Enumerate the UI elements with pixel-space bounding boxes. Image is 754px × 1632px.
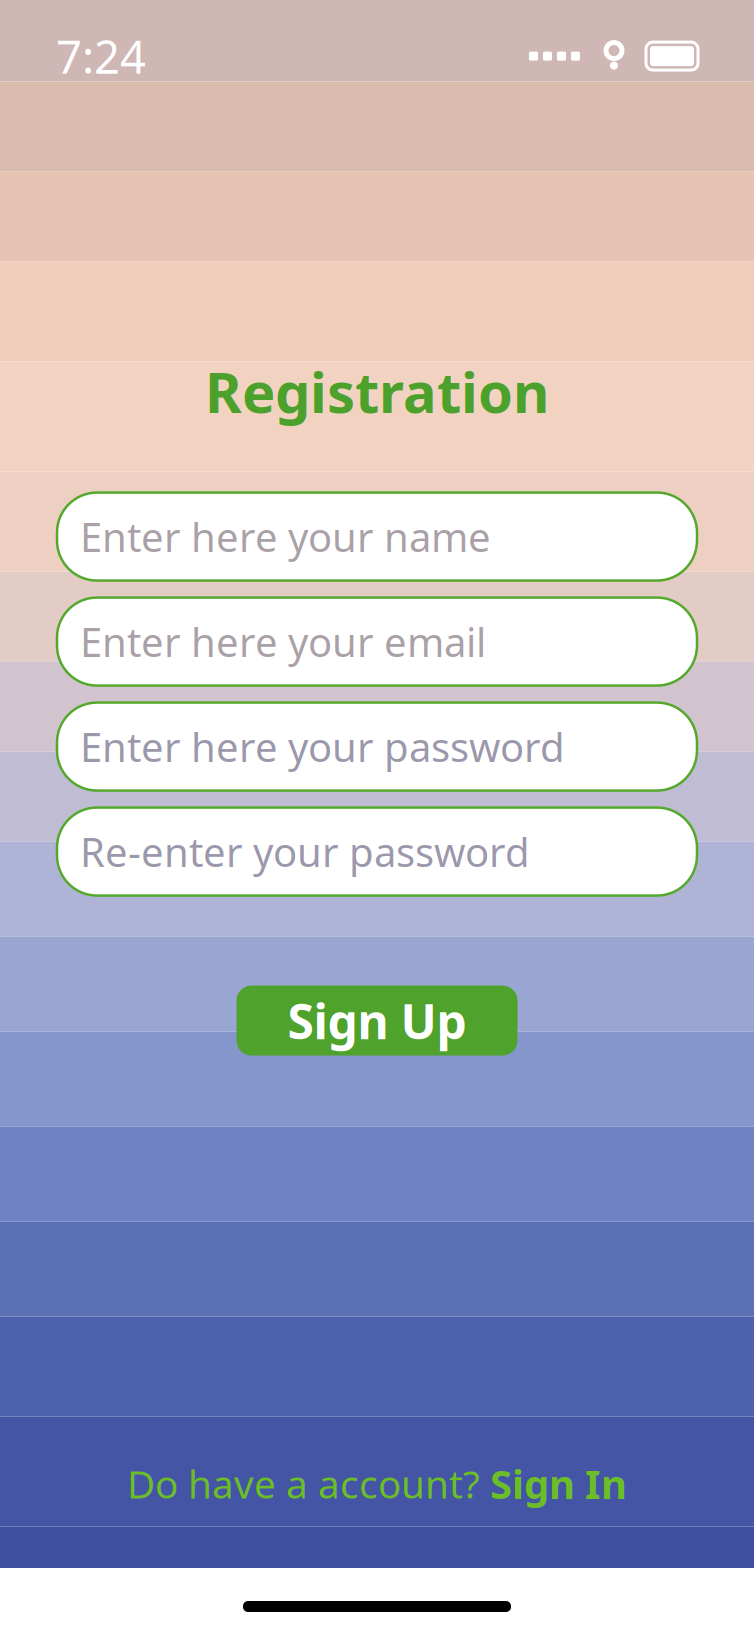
button[interactable]: Enter here your email <box>57 598 697 686</box>
staticText: Registration <box>205 354 549 429</box>
button[interactable]: Sign Up <box>236 986 517 1056</box>
staticText: Enter here your password <box>80 720 565 773</box>
staticText: Sign In <box>490 1457 627 1510</box>
button[interactable]: Enter here your password <box>57 703 697 791</box>
staticText: Re-enter your password <box>80 825 530 878</box>
button[interactable]: Enter here your name <box>57 493 697 581</box>
staticText: Enter here your name <box>80 510 491 563</box>
staticText: 7:24 <box>56 26 146 86</box>
staticText: Sign Up <box>287 989 466 1052</box>
button[interactable]: Do have a account? <box>127 1457 627 1510</box>
staticText: Do have a account? <box>127 1458 480 1509</box>
button[interactable]: Re-enter your password <box>57 808 697 896</box>
staticText: Enter here your email <box>80 615 486 668</box>
